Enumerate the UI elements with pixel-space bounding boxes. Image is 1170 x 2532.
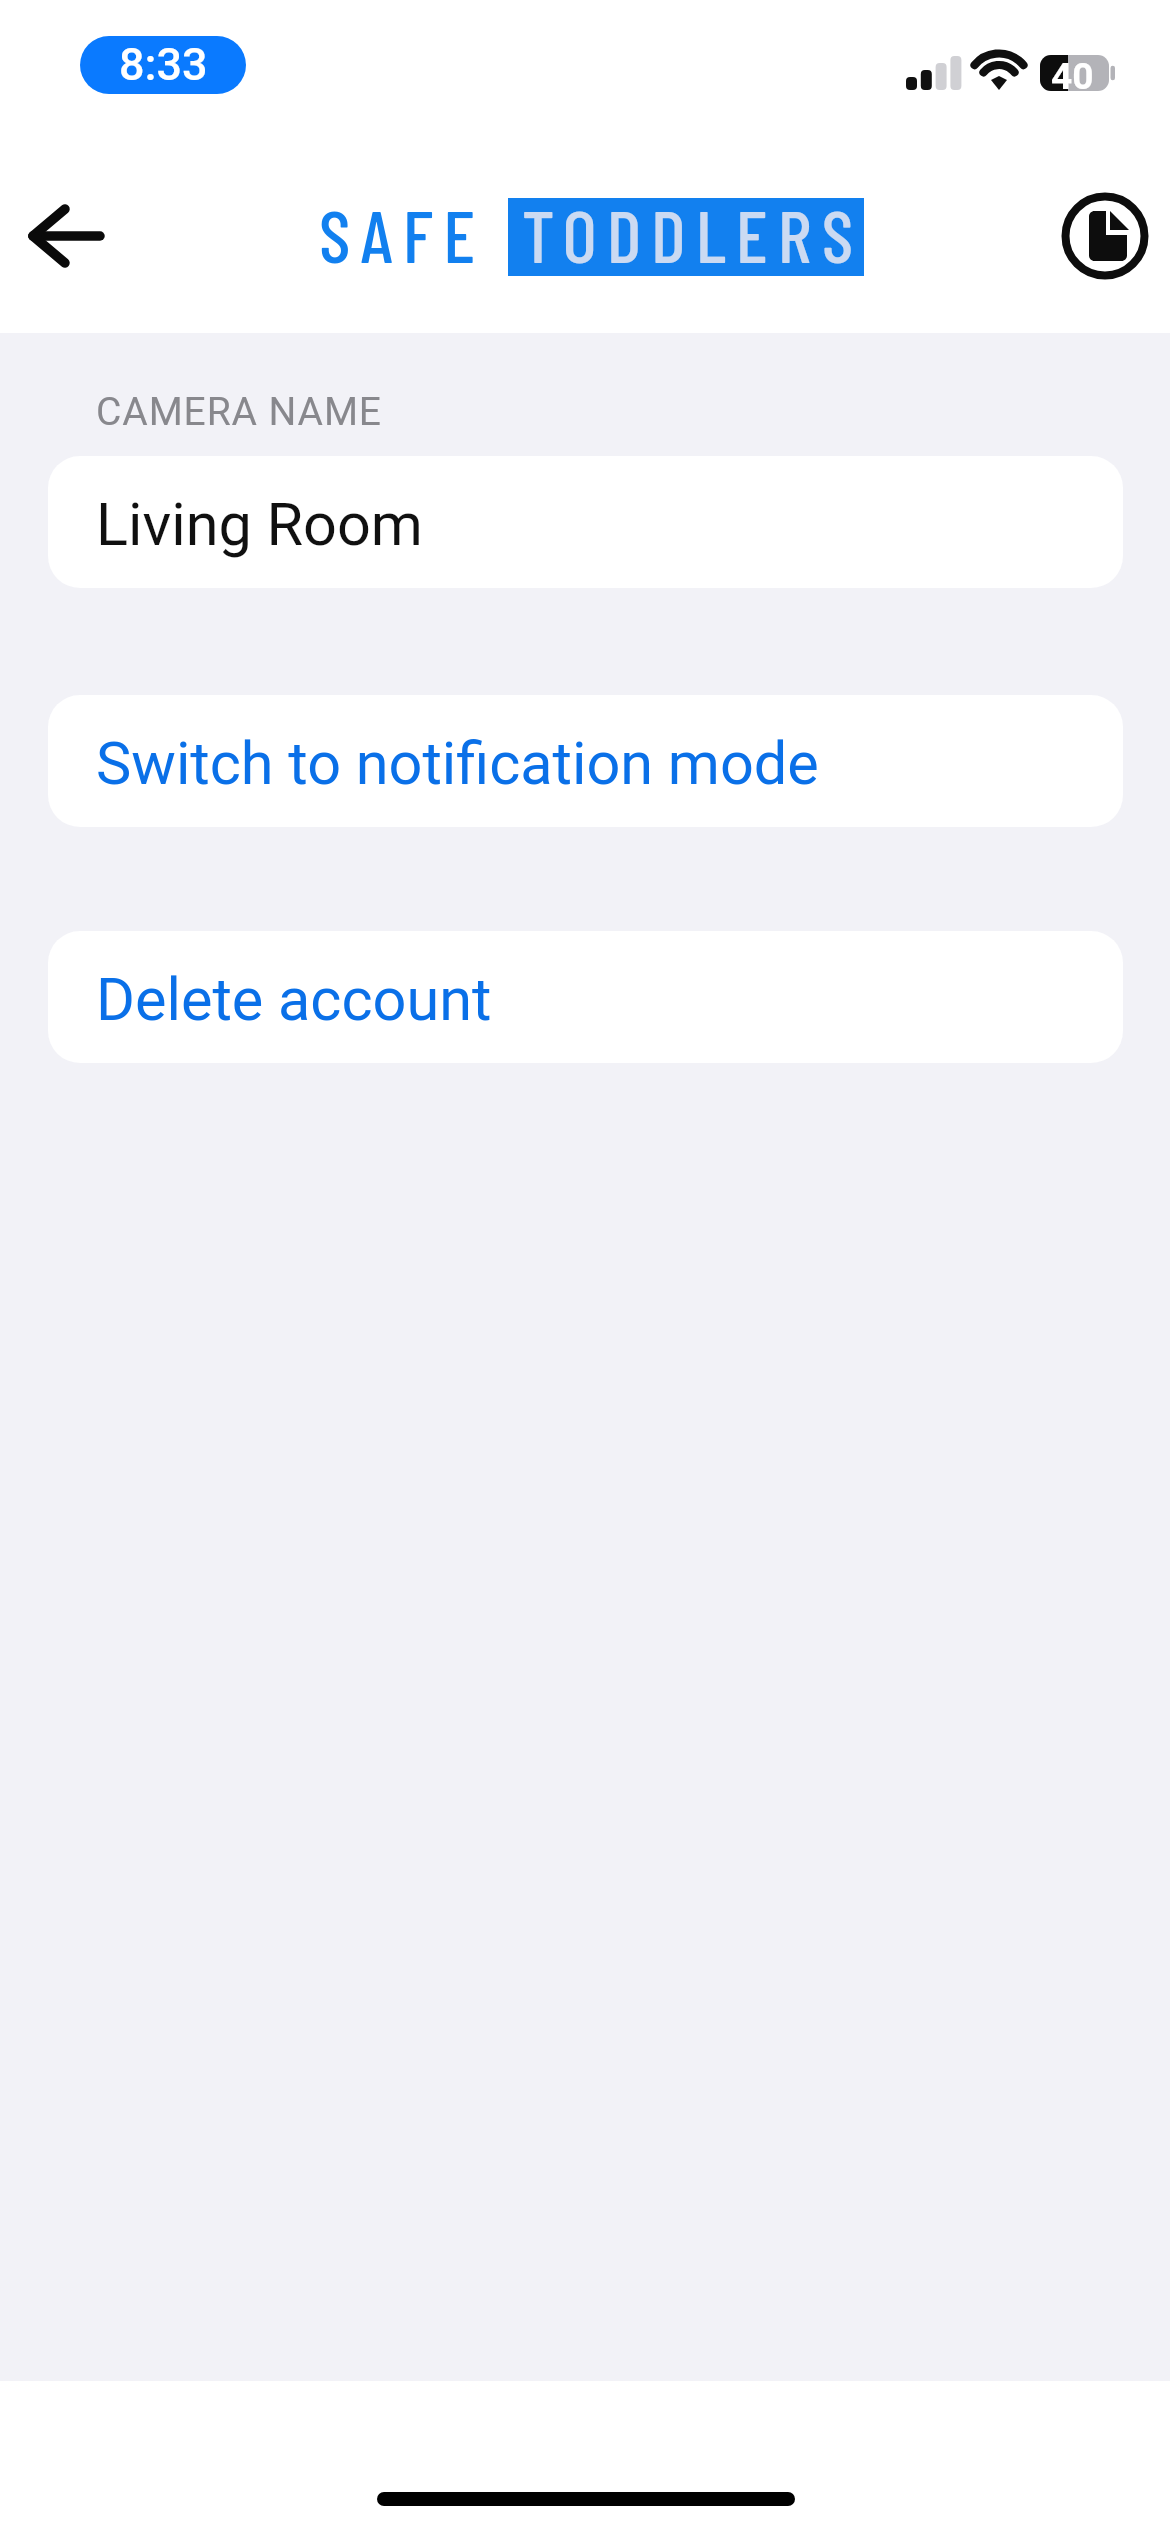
button[interactable]: Switch to notification mode (48, 695, 1123, 827)
button[interactable]: Documents (1053, 184, 1157, 288)
staticText: SAFE (319, 189, 486, 278)
staticText: 8:33 (119, 38, 208, 91)
staticText: Living Room (96, 490, 423, 560)
staticText: 40 (1051, 55, 1094, 91)
staticText: CAMERA NAME (96, 389, 382, 435)
button[interactable]: Delete account (48, 931, 1123, 1063)
staticText: TODDLERS (522, 189, 864, 278)
staticText: Switch to notification mode (96, 729, 819, 799)
button[interactable]: Back (15, 184, 119, 288)
button[interactable]: Living Room (48, 456, 1123, 588)
staticText: Delete account (96, 965, 492, 1035)
